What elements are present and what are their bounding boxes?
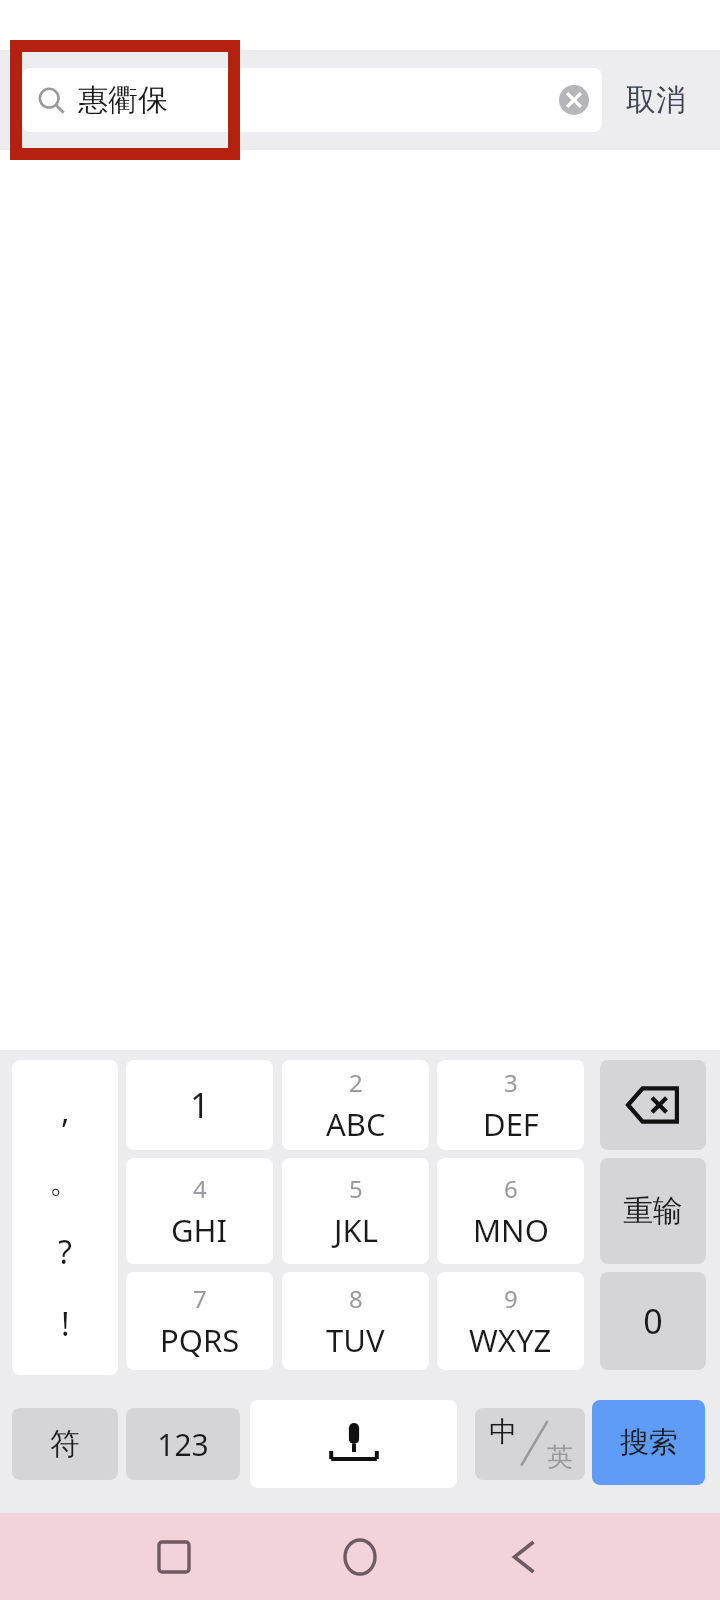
- button[interactable]: ,: [12, 1060, 118, 1375]
- staticText: PQRS: [160, 1319, 240, 1361]
- staticText: 8: [349, 1282, 363, 1315]
- staticText: 2: [349, 1066, 363, 1099]
- staticText: WXYZ: [469, 1319, 552, 1361]
- button[interactable]: 取消: [606, 62, 706, 138]
- staticText: 6: [504, 1172, 518, 1205]
- button[interactable]: Clear text: [552, 78, 596, 122]
- staticText: GHI: [171, 1209, 228, 1251]
- staticText: 符: [50, 1425, 80, 1463]
- staticText: 9: [504, 1282, 518, 1315]
- staticText: ABC: [326, 1103, 386, 1145]
- staticText: 4: [193, 1172, 207, 1205]
- button[interactable]: 惠衢保: [22, 68, 602, 132]
- staticText: !: [61, 1302, 70, 1346]
- button[interactable]: 123: [126, 1408, 240, 1480]
- button[interactable]: 5: [282, 1158, 429, 1264]
- button[interactable]: 符: [12, 1408, 118, 1480]
- staticText: 。: [49, 1161, 81, 1201]
- button[interactable]: 2: [282, 1060, 429, 1150]
- staticText: MNO: [473, 1209, 549, 1251]
- staticText: 0: [643, 1298, 663, 1344]
- button[interactable]: 4: [126, 1158, 273, 1264]
- staticText: 取消: [626, 81, 686, 119]
- staticText: 惠衢保: [78, 81, 168, 119]
- button[interactable]: Voice input: [250, 1400, 457, 1488]
- button[interactable]: 8: [282, 1272, 429, 1370]
- button[interactable]: 3: [437, 1060, 584, 1150]
- button[interactable]: 9: [437, 1272, 584, 1370]
- button[interactable]: 7: [126, 1272, 273, 1370]
- staticText: DEF: [483, 1103, 539, 1145]
- button[interactable]: Backspace: [600, 1060, 706, 1150]
- staticText: 3: [504, 1066, 518, 1099]
- button[interactable]: 1: [126, 1060, 273, 1150]
- button[interactable]: 重输: [600, 1158, 706, 1264]
- staticText: 5: [349, 1172, 363, 1205]
- staticText: TUV: [326, 1319, 385, 1361]
- button[interactable]: Back: [482, 1513, 570, 1600]
- staticText: 重输: [623, 1192, 683, 1230]
- staticText: 1: [190, 1082, 210, 1128]
- button[interactable]: Home: [316, 1513, 404, 1600]
- button[interactable]: 0: [600, 1272, 706, 1370]
- staticText: 搜索: [620, 1424, 678, 1461]
- staticText: 中: [489, 1414, 517, 1449]
- button[interactable]: 搜索: [592, 1400, 705, 1485]
- staticText: JKL: [334, 1209, 378, 1251]
- staticText: 7: [193, 1282, 207, 1315]
- staticText: ,: [61, 1089, 70, 1133]
- staticText: 123: [157, 1424, 209, 1465]
- button[interactable]: 中: [475, 1408, 585, 1480]
- button[interactable]: Recent apps: [130, 1513, 218, 1600]
- staticText: ?: [58, 1230, 72, 1274]
- button[interactable]: 6: [437, 1158, 584, 1264]
- staticText: 英: [547, 1441, 573, 1474]
